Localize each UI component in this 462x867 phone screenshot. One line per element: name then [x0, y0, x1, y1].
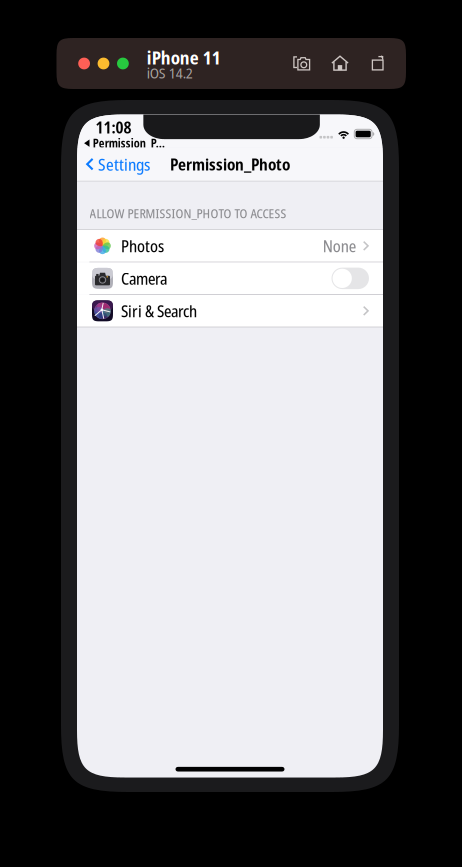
staticText: Camera: [121, 267, 167, 289]
staticText: None: [323, 235, 356, 257]
button[interactable]: Rotate: [369, 54, 387, 72]
button[interactable]: Screenshot: [293, 54, 311, 72]
staticText: Permission_P…: [93, 135, 165, 151]
staticText: ALLOW PERMISSION_PHOTO TO ACCESS: [90, 204, 287, 222]
button[interactable]: Siri & Search: [77, 295, 383, 327]
staticText: iPhone 11: [147, 46, 221, 70]
staticText: Photos: [121, 235, 164, 257]
staticText: Permission_Photo: [170, 153, 290, 175]
button[interactable]: Camera: [77, 262, 383, 294]
staticText: iOS 14.2: [147, 63, 193, 83]
staticText: 11:08: [95, 116, 131, 138]
button[interactable]: Home: [331, 54, 349, 72]
staticText: Siri & Search: [121, 300, 197, 322]
button[interactable]: Settings: [77, 147, 150, 181]
staticText: Settings: [98, 153, 150, 176]
button[interactable]: Photos: [77, 230, 383, 262]
